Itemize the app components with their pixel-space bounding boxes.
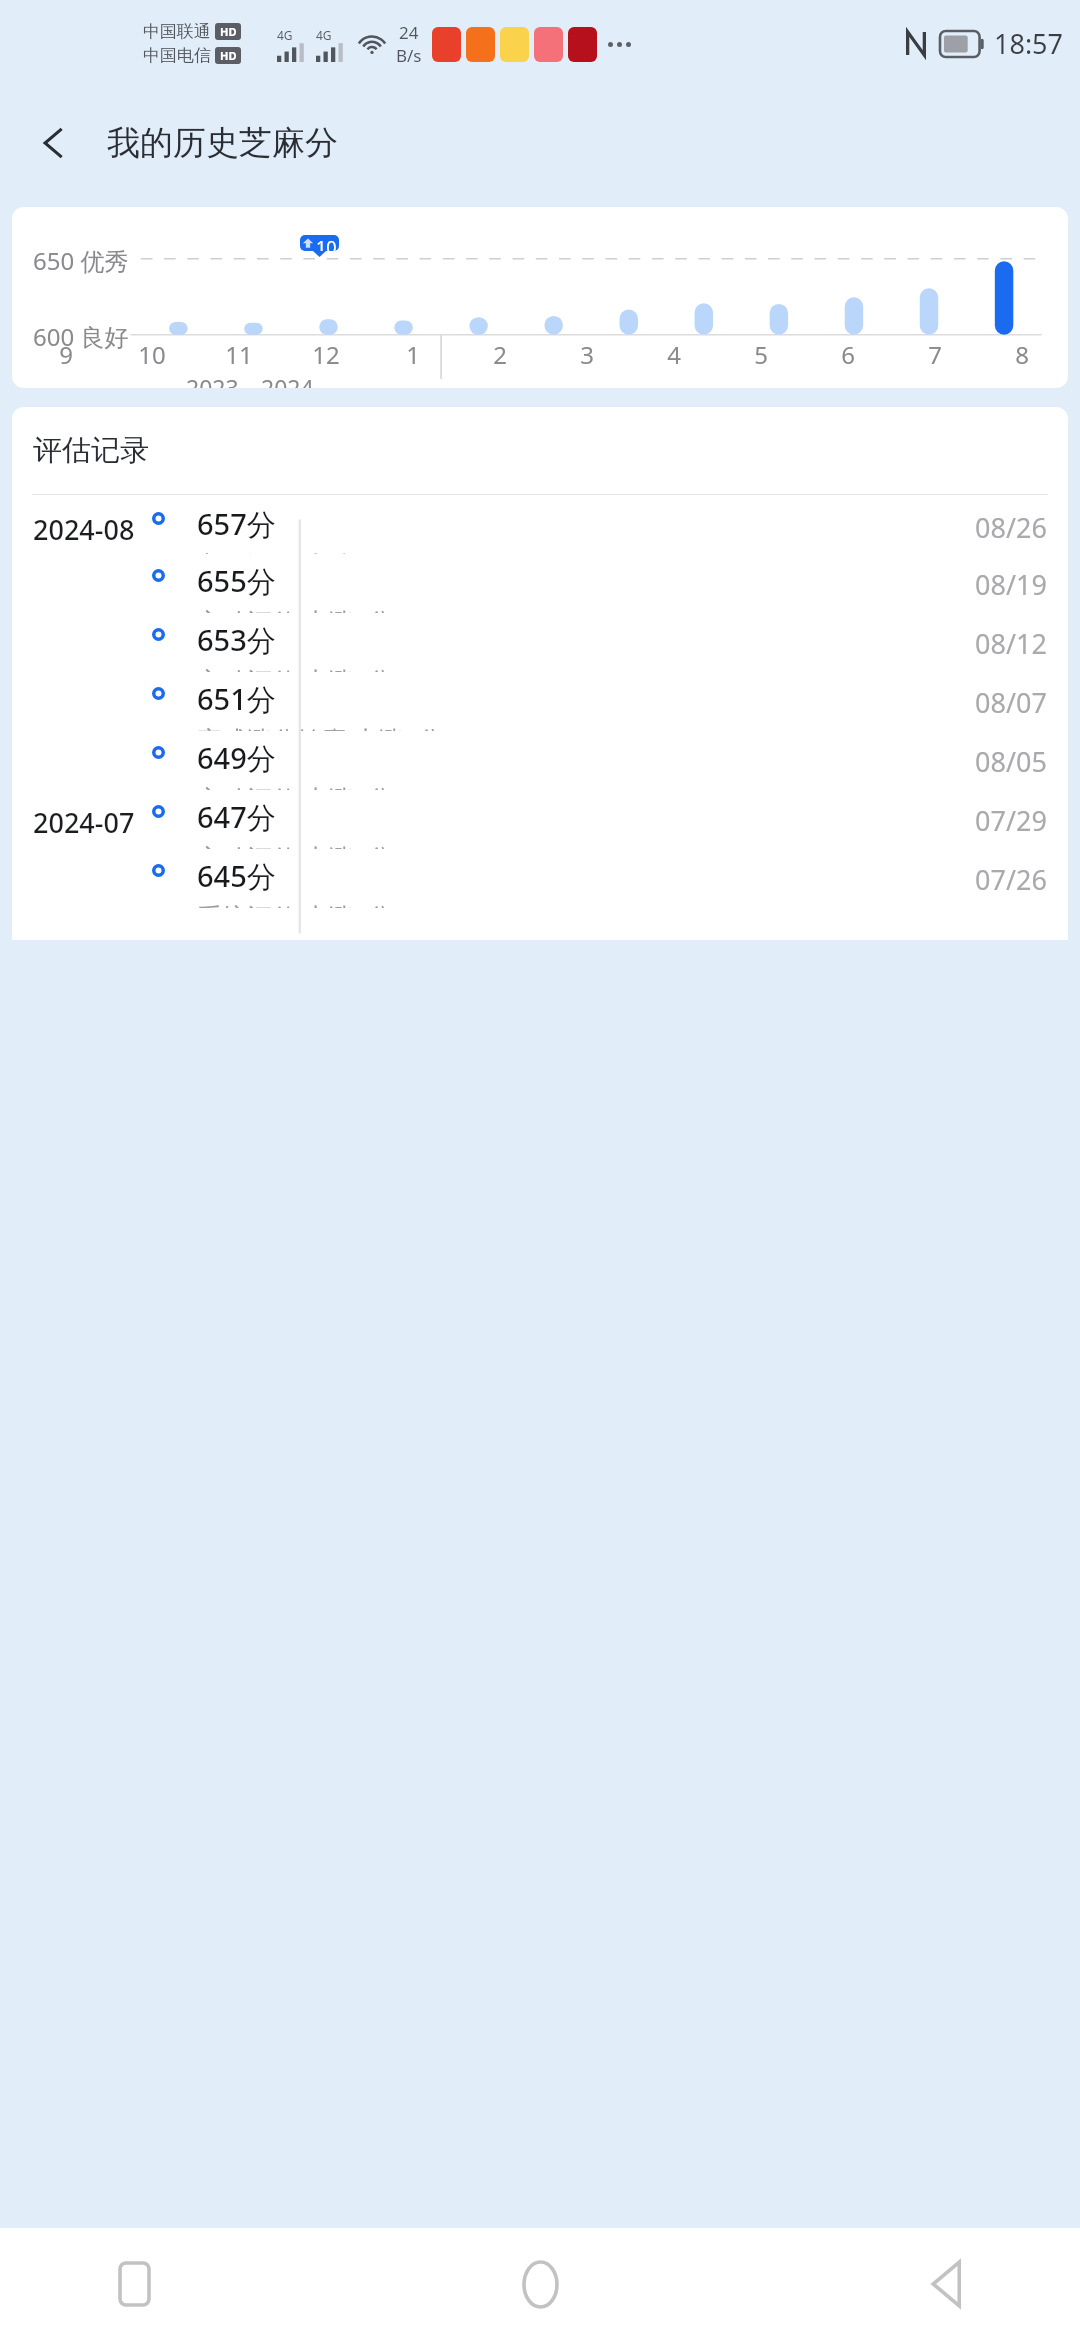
staticText: 1 [406,338,420,371]
button[interactable]: 651分 [12,672,1068,731]
staticText: 3 [580,338,594,371]
staticText: 07/26 [975,861,1047,898]
button[interactable]: 645分 [12,849,1068,908]
button[interactable]: 650 优秀 [12,207,1068,388]
staticText: 08/19 [975,566,1047,603]
staticText: 10 [316,235,337,251]
staticText: 24 [399,21,419,44]
button[interactable]: Home [504,2248,576,2320]
staticText: 653分 [197,620,276,660]
staticText: 4G [277,27,293,43]
staticText: 6 [841,338,855,371]
staticText: 2024-07 [33,804,135,841]
staticText: 主动评估 上涨2分 [197,547,393,554]
staticText: 08/12 [975,625,1047,662]
staticText: 645分 [197,856,276,896]
staticText: 08/07 [975,684,1047,721]
staticText: 2023 [186,372,239,388]
staticText: 4 [667,338,681,371]
staticText: 主动评估 上涨2分 [197,604,393,613]
staticText: 08/05 [975,743,1047,780]
staticText: 2024-08 [33,511,135,548]
staticText: 08/26 [975,509,1047,546]
staticText: 11 [225,338,253,371]
staticText: B/s [396,44,422,67]
staticText: 2024 [261,372,314,388]
staticText: 10 [138,338,166,371]
button[interactable]: 649分 [12,731,1068,790]
staticText: 主动评估 上涨2分 [197,840,393,849]
staticText: 07/29 [975,802,1047,839]
staticText: 655分 [197,561,276,601]
button[interactable]: 返回 [20,109,88,177]
staticText: 9 [59,338,73,371]
staticText: 2 [493,338,507,371]
button[interactable]: 653分 [12,613,1068,672]
button[interactable]: Recents [98,2248,170,2320]
staticText: 651分 [197,679,276,719]
staticText: 18:57 [994,25,1064,62]
staticText: 中国联通 [143,21,211,42]
staticText: 主动评估 上涨2分 [197,781,393,790]
staticText: 评估记录 [33,432,149,469]
staticText: 12 [312,338,340,371]
staticText: 600 良好 [33,320,129,353]
staticText: 647分 [197,797,276,837]
staticText: 主动评估 上涨2分 [197,663,393,672]
staticText: 649分 [197,738,276,778]
staticText: 系统评估 上涨4分 [197,899,393,908]
staticText: 完成涨分锦囊 上涨2分 [197,722,443,731]
button[interactable]: Back [910,2248,982,2320]
staticText: 650 优秀 [33,244,129,277]
button[interactable]: 2024-08 [12,495,1068,554]
button[interactable]: 2024-07 [12,790,1068,849]
staticText: HD [220,48,237,63]
staticText: 7 [928,338,942,371]
staticText: 中国电信 [143,45,211,66]
button[interactable]: 655分 [12,554,1068,613]
staticText: 4G [316,27,332,43]
staticText: 8 [1015,338,1029,371]
staticText: HD [220,24,237,39]
staticText: 我的历史芝麻分 [107,122,338,164]
staticText: 5 [754,338,768,371]
staticText: 657分 [197,504,276,544]
